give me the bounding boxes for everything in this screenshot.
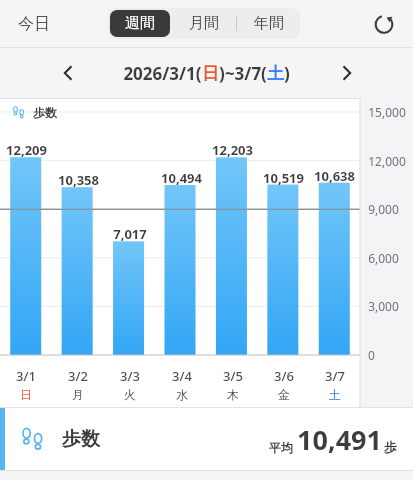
staticText: 平均: [269, 440, 293, 455]
staticText: 3/1: [16, 367, 36, 385]
staticText: 12,000: [368, 153, 406, 169]
staticText: 金: [278, 387, 290, 402]
staticText: 3/2: [68, 367, 88, 385]
staticText: 土: [267, 63, 284, 84]
button[interactable]: 今日: [14, 10, 54, 38]
staticText: 10,494: [161, 169, 202, 187]
staticText: 3/7: [325, 367, 345, 385]
button[interactable]: Next week: [329, 55, 365, 91]
staticText: 9,000: [368, 201, 399, 217]
button[interactable]: Previous week: [50, 55, 86, 91]
staticText: 6,000: [368, 250, 399, 266]
staticText: 7,017: [113, 225, 147, 243]
staticText: 3/6: [274, 367, 294, 385]
staticText: 0: [368, 347, 375, 363]
button[interactable]: 年間: [237, 8, 300, 39]
staticText: 10,358: [58, 171, 99, 189]
staticText: 12,203: [212, 141, 253, 159]
staticText: 土: [329, 387, 341, 402]
staticText: 10,638: [314, 167, 355, 185]
staticText: 日: [202, 63, 219, 84]
staticText: 10,491: [297, 421, 382, 458]
staticText: 歩: [384, 439, 397, 455]
button[interactable]: 週間: [110, 10, 170, 37]
staticText: )~3/7(: [219, 62, 267, 85]
staticText: 木: [227, 387, 239, 402]
staticText: 3/5: [223, 367, 243, 385]
staticText: 火: [124, 387, 136, 402]
staticText: 3,000: [368, 298, 399, 314]
staticText: 水: [176, 387, 188, 402]
staticText: 歩数: [33, 105, 57, 120]
staticText: 週間: [125, 14, 155, 33]
staticText: 12,209: [6, 141, 47, 159]
staticText: 日: [20, 387, 32, 402]
button[interactable]: 歩数: [0, 408, 413, 470]
staticText: 月間: [189, 14, 219, 33]
staticText: 年間: [254, 14, 284, 33]
staticText: 10,519: [263, 169, 304, 187]
button[interactable]: Refresh: [367, 7, 401, 41]
staticText: ): [284, 62, 290, 85]
staticText: 15,000: [368, 104, 406, 120]
staticText: 歩数: [62, 427, 100, 451]
staticText: 3/4: [172, 367, 192, 385]
button[interactable]: 月間: [172, 8, 236, 39]
staticText: 今日: [18, 14, 50, 34]
staticText: 月: [72, 387, 84, 402]
staticText: 3/3: [120, 367, 140, 385]
staticText: 2026/3/1(: [123, 62, 202, 85]
